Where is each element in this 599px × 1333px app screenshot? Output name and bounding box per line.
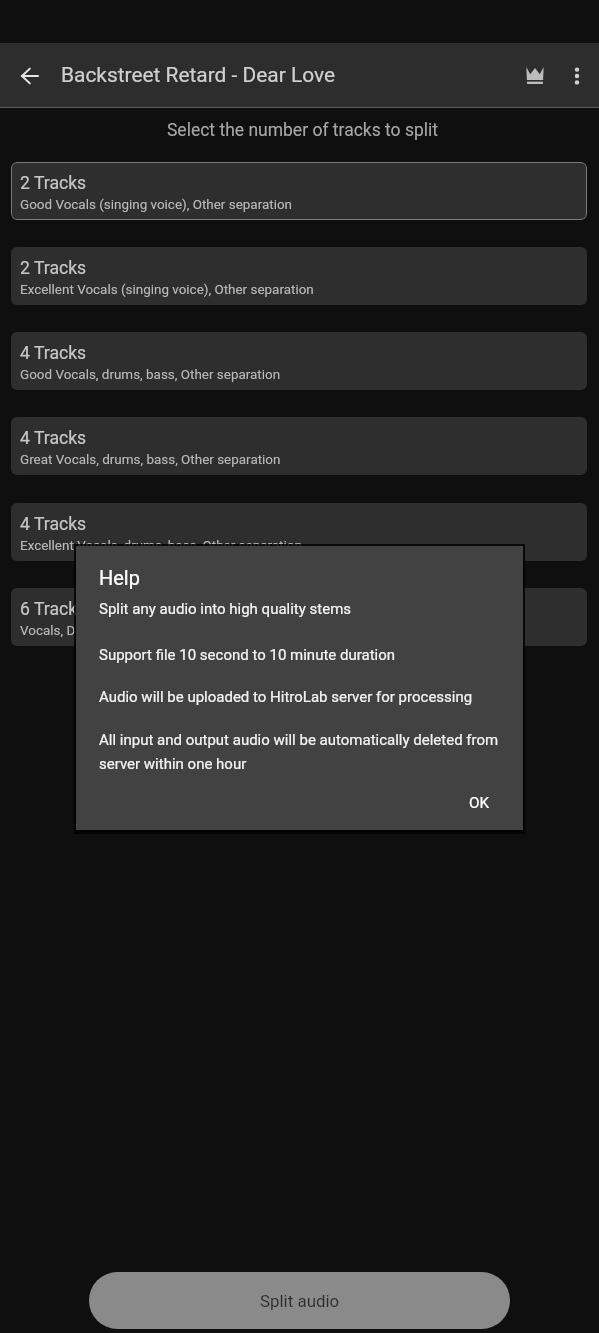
staticText: Good Vocals (singing voice), Other separ… [20, 197, 292, 213]
staticText: Select the number of tracks to split [3, 120, 599, 141]
staticText: All input and output audio will be autom… [99, 731, 503, 772]
staticText: Split audio [260, 1291, 340, 1311]
button[interactable]: 2 Tracks [11, 162, 587, 220]
staticText: OK [469, 794, 490, 812]
staticText: Help [99, 566, 140, 589]
staticText: 6 Tracks [20, 599, 87, 620]
button[interactable]: Split audio [89, 1272, 510, 1329]
button[interactable]: OK [453, 786, 506, 820]
staticText: 4 Tracks [20, 343, 87, 364]
staticText: 4 Tracks [20, 514, 87, 535]
staticText: Split any audio into high quality stems [99, 600, 352, 618]
staticText: Audio will be uploaded to HitroLab serve… [99, 688, 473, 706]
staticText: 2 Tracks [20, 258, 87, 279]
staticText: Support file 10 second to 10 minute dura… [99, 646, 396, 664]
button[interactable]: More options [555, 54, 599, 98]
button[interactable]: 4 Tracks [11, 503, 587, 561]
staticText: Backstreet Retard - Dear Love [61, 63, 336, 87]
staticText: 2 Tracks [20, 173, 87, 194]
staticText: 4 Tracks [20, 428, 87, 449]
staticText: Good Vocals, drums, bass, Other separati… [20, 367, 281, 383]
button[interactable]: 2 Tracks [11, 247, 587, 305]
staticText: Vocals, Drums, Bass, Guitar, Piano, Othe… [20, 623, 262, 639]
button[interactable]: 4 Tracks [11, 332, 587, 390]
button[interactable]: Premium [511, 51, 559, 99]
staticText: Great Vocals, drums, bass, Other separat… [20, 452, 281, 468]
staticText: Excellent Vocals, drums, bass, Other sep… [20, 538, 302, 554]
button[interactable]: 4 Tracks [11, 417, 587, 475]
staticText: Excellent Vocals (singing voice), Other … [20, 282, 314, 298]
button[interactable]: Navigate up [2, 44, 57, 108]
button[interactable]: 6 Tracks [11, 588, 587, 646]
